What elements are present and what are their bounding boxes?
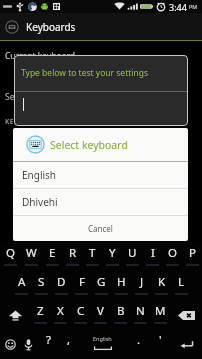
button[interactable]: Backspace: [170, 301, 202, 330]
button[interactable]: K: [151, 272, 171, 301]
staticText: English: [22, 168, 57, 182]
button[interactable]: C: [70, 301, 90, 330]
button[interactable]: X: [50, 301, 70, 330]
button[interactable]: Shift: [0, 301, 30, 330]
button[interactable]: Q: [0, 243, 21, 272]
staticText: L: [178, 274, 185, 290]
staticText: E: [49, 245, 56, 261]
staticText: Z: [37, 303, 44, 319]
button[interactable]: Enter: [170, 330, 202, 359]
button[interactable]: .: [128, 330, 150, 359]
button[interactable]: Y: [102, 243, 122, 272]
button[interactable]: R: [62, 243, 82, 272]
button[interactable]: I: [142, 243, 162, 272]
button[interactable]: J: [131, 272, 151, 301]
button[interactable]: W: [21, 243, 42, 272]
staticText: ': [159, 332, 162, 348]
button[interactable]: V: [90, 301, 110, 330]
staticText: G: [97, 274, 106, 290]
button[interactable]: M: [150, 301, 170, 330]
staticText: X: [57, 303, 64, 319]
staticText: N: [136, 303, 145, 319]
staticText: 3:44: [169, 1, 187, 13]
staticText: Type below to test your settings: [21, 67, 149, 79]
staticText: I: [151, 245, 155, 261]
button[interactable]: G: [91, 272, 111, 301]
staticText: C: [77, 303, 85, 319]
staticText: D: [57, 274, 66, 290]
staticText: ?: [46, 332, 51, 348]
staticText: R: [69, 245, 77, 261]
staticText: Current keyboard: [5, 50, 76, 62]
staticText: Cancel: [88, 223, 113, 234]
staticText: English: [93, 335, 112, 342]
staticText: KEYBOARDS: [5, 117, 48, 126]
staticText: U: [128, 245, 137, 261]
staticText: H: [117, 274, 126, 290]
button[interactable]: Voice input: [21, 330, 35, 359]
staticText: V: [97, 303, 104, 319]
button[interactable]: ,: [62, 330, 76, 359]
staticText: P: [189, 245, 196, 261]
button[interactable]: ': [150, 330, 170, 359]
staticText: ,: [67, 332, 71, 348]
staticText: Dhivehi: [22, 195, 58, 209]
staticText: M: [155, 303, 166, 319]
staticText: T: [89, 245, 96, 261]
button[interactable]: S: [31, 272, 51, 301]
staticText: F: [79, 274, 85, 290]
button[interactable]: Cancel: [13, 216, 188, 241]
button[interactable]: App icon: [0, 13, 202, 40]
staticText: Select keyboard: [50, 138, 128, 152]
staticText: Keyboards: [26, 20, 76, 34]
staticText: .: [137, 332, 141, 348]
staticText: J: [140, 274, 144, 290]
button[interactable]: D: [51, 272, 71, 301]
staticText: S: [38, 274, 45, 290]
other: App icon: [5, 20, 19, 34]
button[interactable]: O: [162, 243, 182, 272]
button[interactable]: Z: [30, 301, 50, 330]
button[interactable]: F: [71, 272, 91, 301]
button[interactable]: P: [182, 243, 202, 272]
button[interactable]: English: [13, 162, 188, 188]
staticText: Q: [6, 245, 15, 261]
button[interactable]: E: [42, 243, 62, 272]
staticText: PM: [189, 3, 198, 10]
staticText: B: [117, 303, 125, 319]
button[interactable]: A: [11, 272, 31, 301]
staticText: Y: [109, 245, 116, 261]
button[interactable]: T: [82, 243, 102, 272]
button[interactable]: Dhivehi: [13, 189, 188, 215]
staticText: Select keyboard: [5, 91, 69, 103]
button[interactable]: B: [110, 301, 130, 330]
button[interactable]: U: [122, 243, 142, 272]
staticText: W: [26, 245, 37, 261]
button[interactable]: L: [171, 272, 191, 301]
staticText: A: [18, 274, 26, 290]
button[interactable]: Space, English: [76, 330, 128, 359]
button[interactable]: N: [130, 301, 150, 330]
staticText: K: [158, 274, 166, 290]
staticText: O: [168, 245, 177, 261]
button[interactable]: ?: [35, 330, 62, 359]
button[interactable]: Emoji: [0, 330, 21, 359]
button[interactable]: H: [111, 272, 131, 301]
